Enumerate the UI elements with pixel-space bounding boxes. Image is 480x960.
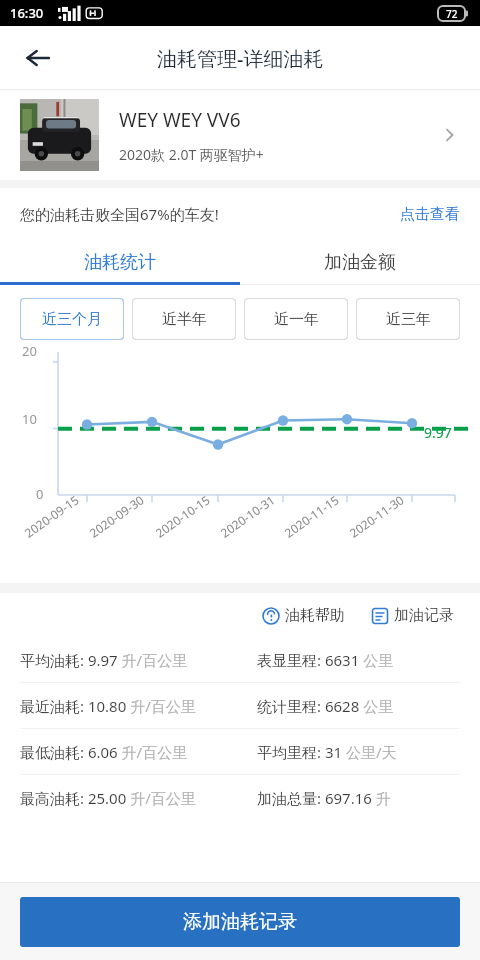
staticText: 2020-11-30	[346, 491, 407, 541]
staticText: WEY WEY VV6	[119, 107, 241, 133]
staticText: 9.97	[424, 423, 452, 442]
button[interactable]: 点击查看	[380, 197, 480, 232]
staticText: 近一年	[274, 310, 319, 329]
staticText: 近三年	[386, 310, 431, 329]
button[interactable]: 油耗统计	[0, 240, 240, 285]
staticText: 2020-11-15	[281, 491, 342, 541]
staticText: 加油总量: 697.16 升	[257, 788, 391, 808]
staticText: 2020-10-31	[217, 491, 278, 541]
staticText: 72	[446, 7, 458, 21]
button[interactable]: 油耗帮助	[256, 600, 351, 631]
staticText: 2020-09-30	[86, 491, 147, 541]
button[interactable]: Back	[14, 34, 62, 82]
staticText: 2020-09-15	[21, 491, 82, 541]
button[interactable]: 近半年	[133, 299, 235, 339]
button[interactable]: 加油记录	[365, 600, 460, 631]
button[interactable]: 近三个月	[21, 299, 123, 339]
button[interactable]: 近一年	[245, 299, 347, 339]
staticText: 油耗统计	[84, 251, 156, 274]
staticText: 近三个月	[42, 310, 102, 329]
staticText: 添加油耗记录	[183, 910, 297, 934]
staticText: 平均油耗: 9.97 升/百公里	[20, 650, 188, 670]
staticText: 最高油耗: 25.00 升/百公里	[20, 788, 196, 808]
staticText: 0	[36, 485, 44, 503]
staticText: 点击查看	[400, 205, 460, 224]
staticText: 2020-10-15	[152, 491, 213, 541]
staticText: 平均里程: 31 公里/天	[257, 742, 397, 762]
staticText: 油耗帮助	[285, 606, 345, 625]
staticText: 近半年	[162, 310, 207, 329]
button[interactable]: 添加油耗记录	[20, 897, 460, 947]
staticText: 您的油耗击败全国67%的车友!	[20, 204, 219, 224]
staticText: 20	[22, 342, 37, 360]
staticText: 加油记录	[394, 606, 454, 625]
button[interactable]: 加油金额	[240, 240, 480, 285]
staticText: 最低油耗: 6.06 升/百公里	[20, 742, 188, 762]
staticText: 表显里程: 6631 公里	[257, 650, 394, 670]
staticText: 加油金额	[324, 251, 396, 274]
staticText: 16:30	[10, 4, 44, 22]
button[interactable]: 近三年	[357, 299, 459, 339]
staticText: 10	[22, 410, 37, 428]
staticText: 统计里程: 6628 公里	[257, 696, 394, 716]
staticText: 最近油耗: 10.80 升/百公里	[20, 696, 196, 716]
button[interactable]: WEY WEY VV6	[0, 90, 480, 180]
staticText: 油耗管理-详细油耗	[157, 45, 324, 72]
staticText: 2020款 2.0T 两驱智护+	[119, 145, 264, 164]
